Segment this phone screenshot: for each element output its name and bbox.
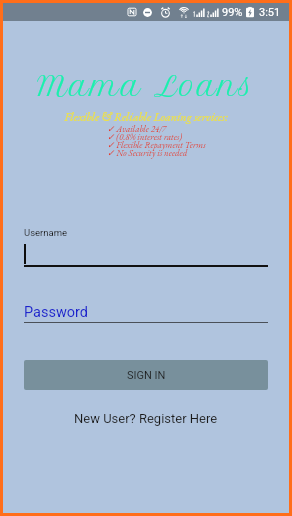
staticText: Username [24,227,68,238]
staticText: 99% [222,6,243,19]
button[interactable]: New User? Register Here [24,409,268,427]
staticText: SIGN IN [127,369,166,382]
staticText: ✓ Available 24/7 ✓ (0.8% interest rates)… [107,123,292,159]
staticText: New User? Register Here [74,411,218,426]
staticText: Mama Loans [3,69,289,103]
staticText: 3:51 [259,6,281,19]
button[interactable]: SIGN IN [24,360,268,390]
staticText: Password [24,304,89,321]
staticText: Flexible & Reliable Loaning services: [3,109,289,125]
